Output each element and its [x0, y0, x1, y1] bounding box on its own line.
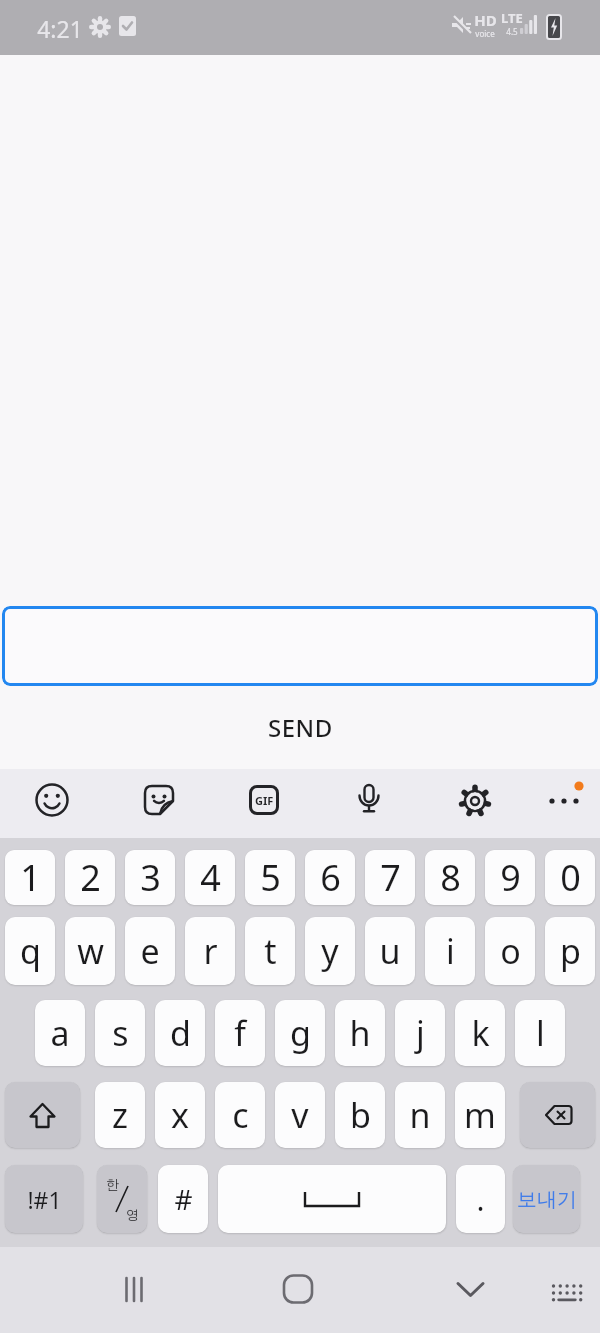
button[interactable]: k: [455, 1000, 505, 1066]
button[interactable]: g: [275, 1000, 325, 1066]
staticText: g: [290, 1010, 311, 1056]
staticText: n: [409, 1092, 431, 1138]
staticText: m: [464, 1092, 496, 1138]
staticText: c: [232, 1092, 249, 1138]
button[interactable]: [25, 773, 79, 827]
button[interactable]: z: [95, 1082, 145, 1148]
button[interactable]: y: [305, 917, 355, 985]
staticText: .: [476, 1179, 485, 1220]
button[interactable]: [448, 774, 502, 828]
button[interactable]: GIF: [249, 785, 279, 815]
staticText: t: [264, 928, 277, 974]
staticText: d: [170, 1010, 191, 1056]
button[interactable]: 0: [545, 850, 595, 905]
button[interactable]: [107, 1263, 161, 1317]
button[interactable]: m: [455, 1082, 505, 1148]
button[interactable]: 2: [65, 850, 115, 905]
button[interactable]: u: [365, 917, 415, 985]
staticText: voice: [475, 28, 495, 39]
staticText: y: [321, 928, 339, 974]
button[interactable]: #: [158, 1165, 208, 1233]
staticText: q: [20, 928, 41, 974]
button[interactable]: [520, 1082, 595, 1148]
staticText: 3: [140, 853, 161, 902]
staticText: x: [171, 1092, 189, 1138]
button[interactable]: [97, 1165, 147, 1233]
staticText: 한: [106, 1176, 119, 1192]
button[interactable]: !#1: [5, 1165, 83, 1233]
button[interactable]: x: [155, 1082, 205, 1148]
staticText: 2: [80, 853, 101, 902]
button[interactable]: t: [245, 917, 295, 985]
button[interactable]: i: [425, 917, 475, 985]
button[interactable]: [218, 1165, 446, 1233]
staticText: w: [77, 928, 104, 974]
staticText: 6: [320, 853, 341, 902]
button[interactable]: p: [545, 917, 595, 985]
button[interactable]: [2, 606, 598, 686]
button[interactable]: l: [515, 1000, 565, 1066]
staticText: HD: [474, 10, 497, 30]
staticText: LTE: [501, 9, 523, 27]
button[interactable]: w: [65, 917, 115, 985]
staticText: k: [471, 1010, 490, 1056]
button[interactable]: e: [125, 917, 175, 985]
staticText: a: [50, 1010, 70, 1056]
button[interactable]: d: [155, 1000, 205, 1066]
button[interactable]: [537, 774, 591, 828]
staticText: l: [536, 1010, 545, 1056]
button[interactable]: .: [456, 1165, 505, 1233]
staticText: #: [174, 1180, 193, 1218]
button[interactable]: n: [395, 1082, 445, 1148]
staticText: f: [234, 1010, 246, 1056]
staticText: b: [350, 1092, 371, 1138]
button[interactable]: v: [275, 1082, 325, 1148]
button[interactable]: b: [335, 1082, 385, 1148]
button[interactable]: [132, 773, 186, 827]
button[interactable]: 4: [185, 850, 235, 905]
button[interactable]: [271, 1262, 325, 1316]
staticText: p: [560, 928, 581, 974]
staticText: 영: [126, 1206, 139, 1222]
staticText: h: [349, 1010, 371, 1056]
button[interactable]: c: [215, 1082, 265, 1148]
staticText: 4: [200, 853, 221, 902]
button[interactable]: 7: [365, 850, 415, 905]
staticText: v: [291, 1092, 309, 1138]
button[interactable]: 보내기: [513, 1165, 580, 1233]
staticText: s: [112, 1010, 129, 1056]
button[interactable]: 9: [485, 850, 535, 905]
staticText: 보내기: [517, 1187, 577, 1212]
staticText: GIF: [255, 793, 274, 808]
button[interactable]: 5: [245, 850, 295, 905]
button[interactable]: j: [395, 1000, 445, 1066]
button[interactable]: [443, 1262, 497, 1316]
staticText: 9: [500, 853, 521, 902]
staticText: o: [500, 928, 521, 974]
staticText: z: [112, 1092, 128, 1138]
button[interactable]: 3: [125, 850, 175, 905]
staticText: 4:21: [37, 13, 83, 41]
button[interactable]: [5, 1082, 80, 1148]
button[interactable]: a: [35, 1000, 85, 1066]
button[interactable]: r: [185, 917, 235, 985]
button[interactable]: f: [215, 1000, 265, 1066]
staticText: !#1: [27, 1184, 62, 1215]
button[interactable]: h: [335, 1000, 385, 1066]
staticText: 1: [20, 853, 41, 902]
button[interactable]: 6: [305, 850, 355, 905]
staticText: r: [203, 928, 218, 974]
button[interactable]: o: [485, 917, 535, 985]
staticText: 5: [260, 853, 281, 902]
staticText: i: [446, 928, 455, 974]
button[interactable]: q: [5, 917, 55, 985]
button[interactable]: SEND: [0, 700, 600, 755]
button[interactable]: 1: [5, 850, 55, 905]
button[interactable]: [342, 773, 396, 827]
staticText: SEND: [268, 711, 333, 744]
staticText: u: [379, 928, 401, 974]
button[interactable]: 8: [425, 850, 475, 905]
staticText: 0: [560, 853, 581, 902]
button[interactable]: s: [95, 1000, 145, 1066]
button[interactable]: [540, 1266, 590, 1316]
